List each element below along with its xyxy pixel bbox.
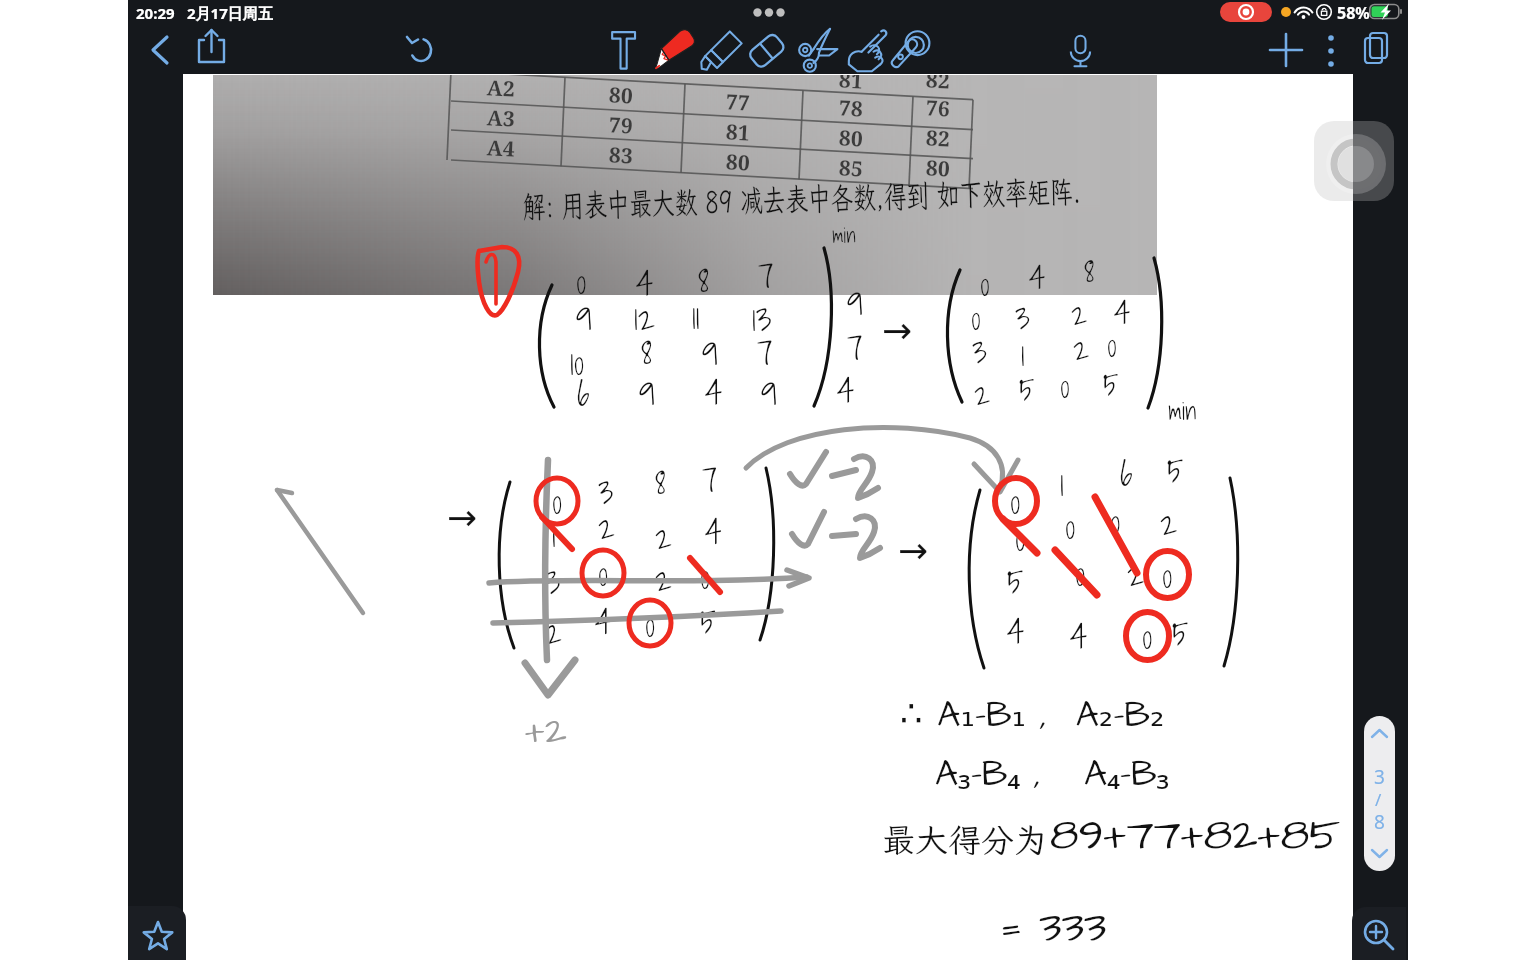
staticText: ∴ A₁-B₁ , A₂-B₂ xyxy=(900,690,1165,740)
staticText: 4 xyxy=(1070,609,1088,664)
staticText: 9 xyxy=(639,365,656,420)
button[interactable]: Cut xyxy=(797,25,841,75)
staticText: 0 xyxy=(1015,511,1026,566)
staticText: 4 xyxy=(636,256,654,311)
staticText: 1 xyxy=(1060,456,1064,511)
button[interactable]: Select xyxy=(843,25,887,75)
staticText: 5 xyxy=(1167,443,1184,498)
button[interactable]: Assistive touch xyxy=(1314,121,1394,201)
button[interactable]: Laser pointer xyxy=(886,25,932,75)
button[interactable]: Microphone xyxy=(1066,33,1094,69)
staticText: 10 xyxy=(570,335,585,390)
button[interactable]: Back xyxy=(146,35,174,67)
button[interactable]: Undo xyxy=(406,34,436,66)
staticText: → xyxy=(447,497,478,539)
staticText: 2 xyxy=(1160,495,1178,550)
staticText: 0 xyxy=(1110,494,1121,549)
staticText: 0 xyxy=(700,550,711,603)
staticText: 2 xyxy=(655,510,672,563)
staticText: 0 xyxy=(645,598,656,651)
staticText: 8 xyxy=(1084,244,1095,295)
button[interactable]: Zoom in xyxy=(1352,907,1406,960)
staticText: 78 xyxy=(838,93,864,124)
staticText: 0 xyxy=(1107,319,1117,370)
staticText: → xyxy=(882,310,913,352)
staticText: 81 xyxy=(725,117,751,148)
staticText: 0 xyxy=(1010,474,1021,529)
staticText: A2 xyxy=(486,75,516,104)
staticText: 5 xyxy=(1172,606,1189,661)
staticText: 2月17日周五 xyxy=(187,3,273,23)
staticText: 5 xyxy=(1007,554,1024,609)
staticText: 89+77+82+85 xyxy=(1050,806,1341,867)
button[interactable]: Highlighter xyxy=(697,26,749,76)
staticText: 3 xyxy=(545,555,561,608)
staticText: 11 xyxy=(692,289,700,344)
staticText: 2 xyxy=(1127,546,1145,601)
staticText: = 333 xyxy=(1000,898,1107,959)
staticText: / xyxy=(1375,788,1382,811)
staticText: 7 xyxy=(702,453,718,506)
staticText: +2 xyxy=(525,706,567,759)
button[interactable]: Text tool xyxy=(608,28,648,74)
staticText: 4 xyxy=(1114,286,1131,337)
staticText: 9 xyxy=(576,290,593,345)
staticText: 0 xyxy=(1142,609,1153,664)
staticText: 4 xyxy=(705,505,722,558)
staticText: 2 xyxy=(655,552,672,605)
staticText: 83 xyxy=(608,140,634,171)
staticText: min xyxy=(1168,392,1197,431)
staticText: 79 xyxy=(608,110,634,141)
staticText: 2 xyxy=(545,605,562,658)
button[interactable]: Screen recording xyxy=(1220,2,1272,22)
staticText: 7 xyxy=(847,320,863,375)
staticText: → xyxy=(898,530,929,572)
staticText: 8 xyxy=(655,455,666,508)
staticText: A4 xyxy=(486,133,516,164)
staticText: 13 xyxy=(752,291,772,346)
button[interactable]: Pen tool xyxy=(648,25,700,77)
staticText: 20:29 xyxy=(136,3,175,23)
staticText: 2 xyxy=(1071,287,1088,338)
staticText: 80 xyxy=(725,147,751,178)
staticText: 2 xyxy=(598,500,615,553)
button[interactable]: Add page xyxy=(1268,33,1304,67)
staticText: 81 xyxy=(838,75,864,96)
staticText: 5 xyxy=(1019,363,1035,414)
button[interactable]: More options xyxy=(1322,33,1340,69)
staticText: 4 xyxy=(595,595,612,648)
staticText: 12 xyxy=(634,290,656,345)
staticText: 1 xyxy=(552,508,556,561)
staticText: A₃-B₄ , A₄-B₃ xyxy=(935,747,1170,800)
staticText: 0 xyxy=(552,475,563,528)
staticText: 0 xyxy=(1060,360,1070,411)
button[interactable]: Page 3 of 8 xyxy=(1364,716,1395,871)
staticText: 77 xyxy=(725,87,751,118)
staticText: 82 xyxy=(925,123,951,154)
staticText: 80 xyxy=(608,80,634,111)
staticText: 4 xyxy=(705,365,723,420)
staticText: 8 xyxy=(1374,809,1385,835)
staticText: 6 xyxy=(1120,446,1133,501)
staticText: 0 xyxy=(598,547,609,600)
staticText: 4 xyxy=(1029,251,1046,302)
staticText: 9 xyxy=(702,325,719,380)
staticText: min xyxy=(832,220,856,252)
button[interactable]: Eraser xyxy=(737,26,793,76)
staticText: 最大得分为 xyxy=(882,818,1047,861)
staticText: 9 xyxy=(761,365,778,420)
staticText: 3 xyxy=(1015,291,1030,342)
staticText: 0 xyxy=(980,258,990,309)
staticText: 4 xyxy=(1007,604,1025,659)
button[interactable]: Share xyxy=(196,28,230,68)
button[interactable]: Bookmark xyxy=(128,906,186,960)
staticText: A3 xyxy=(486,103,516,134)
staticText: 4 xyxy=(837,363,855,418)
staticText: 85 xyxy=(838,153,864,184)
button[interactable]: Pages xyxy=(1362,31,1392,69)
staticText: 解: 用表中最大数 89 减去表中各数,得到 如下效率矩阵. xyxy=(522,170,1082,227)
staticText: 7 xyxy=(757,325,773,380)
staticText: 0 xyxy=(1065,499,1076,554)
staticText: 9 xyxy=(847,275,864,330)
staticText: 6 xyxy=(577,366,590,421)
